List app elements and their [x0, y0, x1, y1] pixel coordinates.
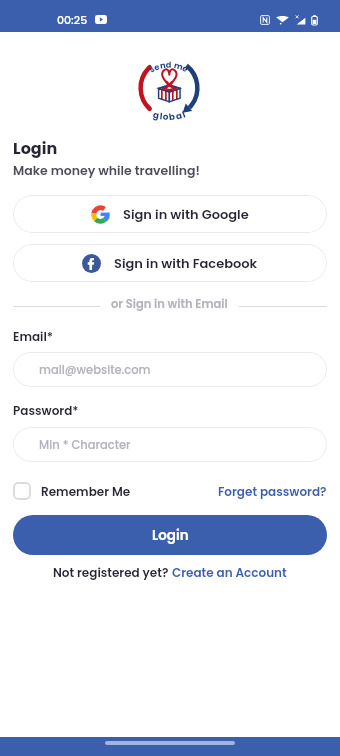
staticText: Email* — [13, 328, 53, 345]
staticText: mail@website.com — [39, 362, 151, 378]
staticText: Sign in with Google — [123, 205, 249, 223]
staticText: or Sign in with Email — [111, 296, 228, 312]
button[interactable]: Login — [13, 515, 327, 555]
button[interactable]: Sign in with Facebook — [13, 244, 327, 282]
button[interactable]: mail@website.com — [13, 352, 327, 387]
staticText: Password* — [13, 402, 79, 419]
staticText: Login — [152, 526, 189, 545]
staticText: Forget password? — [218, 483, 327, 500]
staticText: 00:25 — [57, 12, 88, 27]
staticText: Sign in with Facebook — [114, 254, 258, 272]
staticText: Not registered yet? — [53, 564, 172, 581]
staticText: Min * Character — [39, 437, 131, 453]
button[interactable]: Min * Character — [13, 427, 327, 462]
button[interactable]: Forget password? — [218, 483, 327, 500]
button[interactable]: Create an Account — [172, 564, 287, 581]
staticText: Remember Me — [41, 483, 131, 500]
button[interactable]: Remember Me — [13, 482, 131, 500]
staticText: Create an Account — [172, 564, 287, 581]
staticText: Login — [13, 137, 58, 159]
staticText: Make money while travelling! — [13, 162, 200, 179]
button[interactable]: Sign in with Google — [13, 195, 327, 233]
